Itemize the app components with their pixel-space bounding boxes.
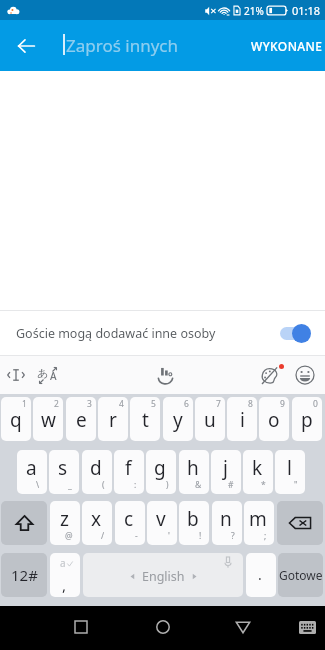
button[interactable]: _ (49, 450, 79, 494)
staticText: ) (166, 479, 169, 491)
button[interactable]: : (114, 450, 144, 494)
button[interactable]: 5 (130, 397, 160, 441)
button[interactable]: Move cursor (6, 365, 26, 385)
button[interactable]: Shift (1, 501, 47, 545)
staticText: ( (102, 479, 105, 491)
staticText: l (287, 455, 292, 481)
button[interactable]: Handwriting (155, 365, 176, 386)
staticText: - (135, 530, 138, 542)
staticText: 9 (280, 398, 285, 410)
staticText: g (154, 455, 166, 481)
staticText: 21% (244, 4, 264, 18)
button[interactable]: WYKONANE (249, 29, 325, 63)
staticText: a (60, 556, 66, 570)
staticText: . (258, 565, 262, 584)
staticText: e (76, 407, 87, 433)
button[interactable]: ! (179, 501, 209, 545)
button[interactable]: 8 (227, 397, 257, 441)
staticText: 3 (87, 398, 92, 410)
button[interactable]: Emoji (295, 365, 315, 385)
staticText: 5 (151, 398, 156, 410)
button[interactable]: 3 (66, 397, 96, 441)
staticText: 0 (313, 398, 318, 410)
staticText: j (223, 455, 228, 481)
button[interactable]: Space (83, 553, 243, 597)
button[interactable]: ? (212, 501, 242, 545)
staticText: * (261, 479, 266, 491)
staticText: y (173, 407, 183, 433)
staticText: _ (68, 479, 72, 491)
button[interactable]: 2 (33, 397, 63, 441)
staticText: f (125, 455, 132, 481)
button[interactable]: a (50, 553, 80, 597)
staticText: " (294, 479, 298, 491)
staticText: o (268, 407, 280, 433)
button[interactable]: 9 (259, 397, 289, 441)
staticText: English (142, 568, 185, 585)
staticText: A (50, 369, 57, 383)
button[interactable]: 7 (195, 397, 225, 441)
button[interactable]: ( (82, 450, 112, 494)
staticText: 8 (248, 398, 253, 410)
staticText: 4 (119, 398, 124, 410)
button[interactable]: / (82, 501, 112, 545)
staticText: 2 (54, 398, 59, 410)
staticText: 1 (22, 398, 27, 410)
staticText: , (62, 575, 67, 595)
staticText: \ (36, 479, 40, 491)
button[interactable]: - (115, 501, 145, 545)
staticText: q (10, 407, 22, 433)
staticText: Gotowe (279, 567, 323, 583)
button[interactable]: 4 (98, 397, 128, 441)
staticText: & (195, 479, 202, 491)
button[interactable]: Home (145, 609, 181, 645)
button[interactable]: " (275, 450, 305, 494)
staticText: h (187, 455, 199, 481)
staticText: p (301, 407, 313, 433)
staticText: w (41, 407, 56, 433)
button[interactable]: Hide keyboard (289, 609, 325, 645)
button[interactable]: Change language (36, 364, 58, 386)
staticText: s (58, 455, 68, 481)
staticText: k (252, 455, 263, 481)
button[interactable]: 6 (163, 397, 193, 441)
staticText: t (142, 407, 149, 433)
button[interactable]: \ (17, 450, 47, 494)
staticText: x (91, 506, 102, 532)
button[interactable]: . (246, 553, 276, 597)
button[interactable]: 0 (292, 397, 322, 441)
button[interactable]: Gotowe (278, 553, 323, 597)
button[interactable]: 12# (1, 553, 47, 597)
staticText: c (124, 506, 134, 532)
button[interactable]: ) (146, 450, 176, 494)
staticText: ! (199, 530, 202, 542)
button[interactable]: @ (50, 501, 80, 545)
staticText: @ (65, 530, 73, 542)
staticText: Zaproś innych (66, 34, 178, 57)
staticText: m (249, 506, 267, 532)
button[interactable]: Goście mogą dodawać inne osoby (0, 311, 325, 355)
button[interactable]: Recents (63, 609, 99, 645)
staticText: 01:18 (292, 3, 321, 18)
staticText: v (156, 506, 166, 532)
staticText: あ (37, 366, 49, 380)
staticText: d (90, 455, 102, 481)
staticText: ? (231, 530, 235, 542)
staticText: n (220, 506, 232, 532)
staticText: u (204, 407, 216, 433)
button[interactable]: Back (225, 609, 261, 645)
button[interactable]: & (179, 450, 209, 494)
staticText: i (240, 407, 245, 433)
staticText: ; (264, 530, 267, 542)
staticText: 7 (216, 398, 221, 410)
staticText: : (134, 479, 137, 491)
button[interactable]: Backspace (277, 501, 323, 545)
button[interactable]: 1 (1, 397, 31, 441)
button[interactable]: Back (9, 29, 43, 63)
button[interactable]: Stickers (261, 363, 285, 387)
button[interactable]: # (211, 450, 241, 494)
button[interactable]: * (243, 450, 273, 494)
button[interactable]: ' (147, 501, 177, 545)
staticText: / (101, 530, 105, 542)
button[interactable]: ; (244, 501, 274, 545)
